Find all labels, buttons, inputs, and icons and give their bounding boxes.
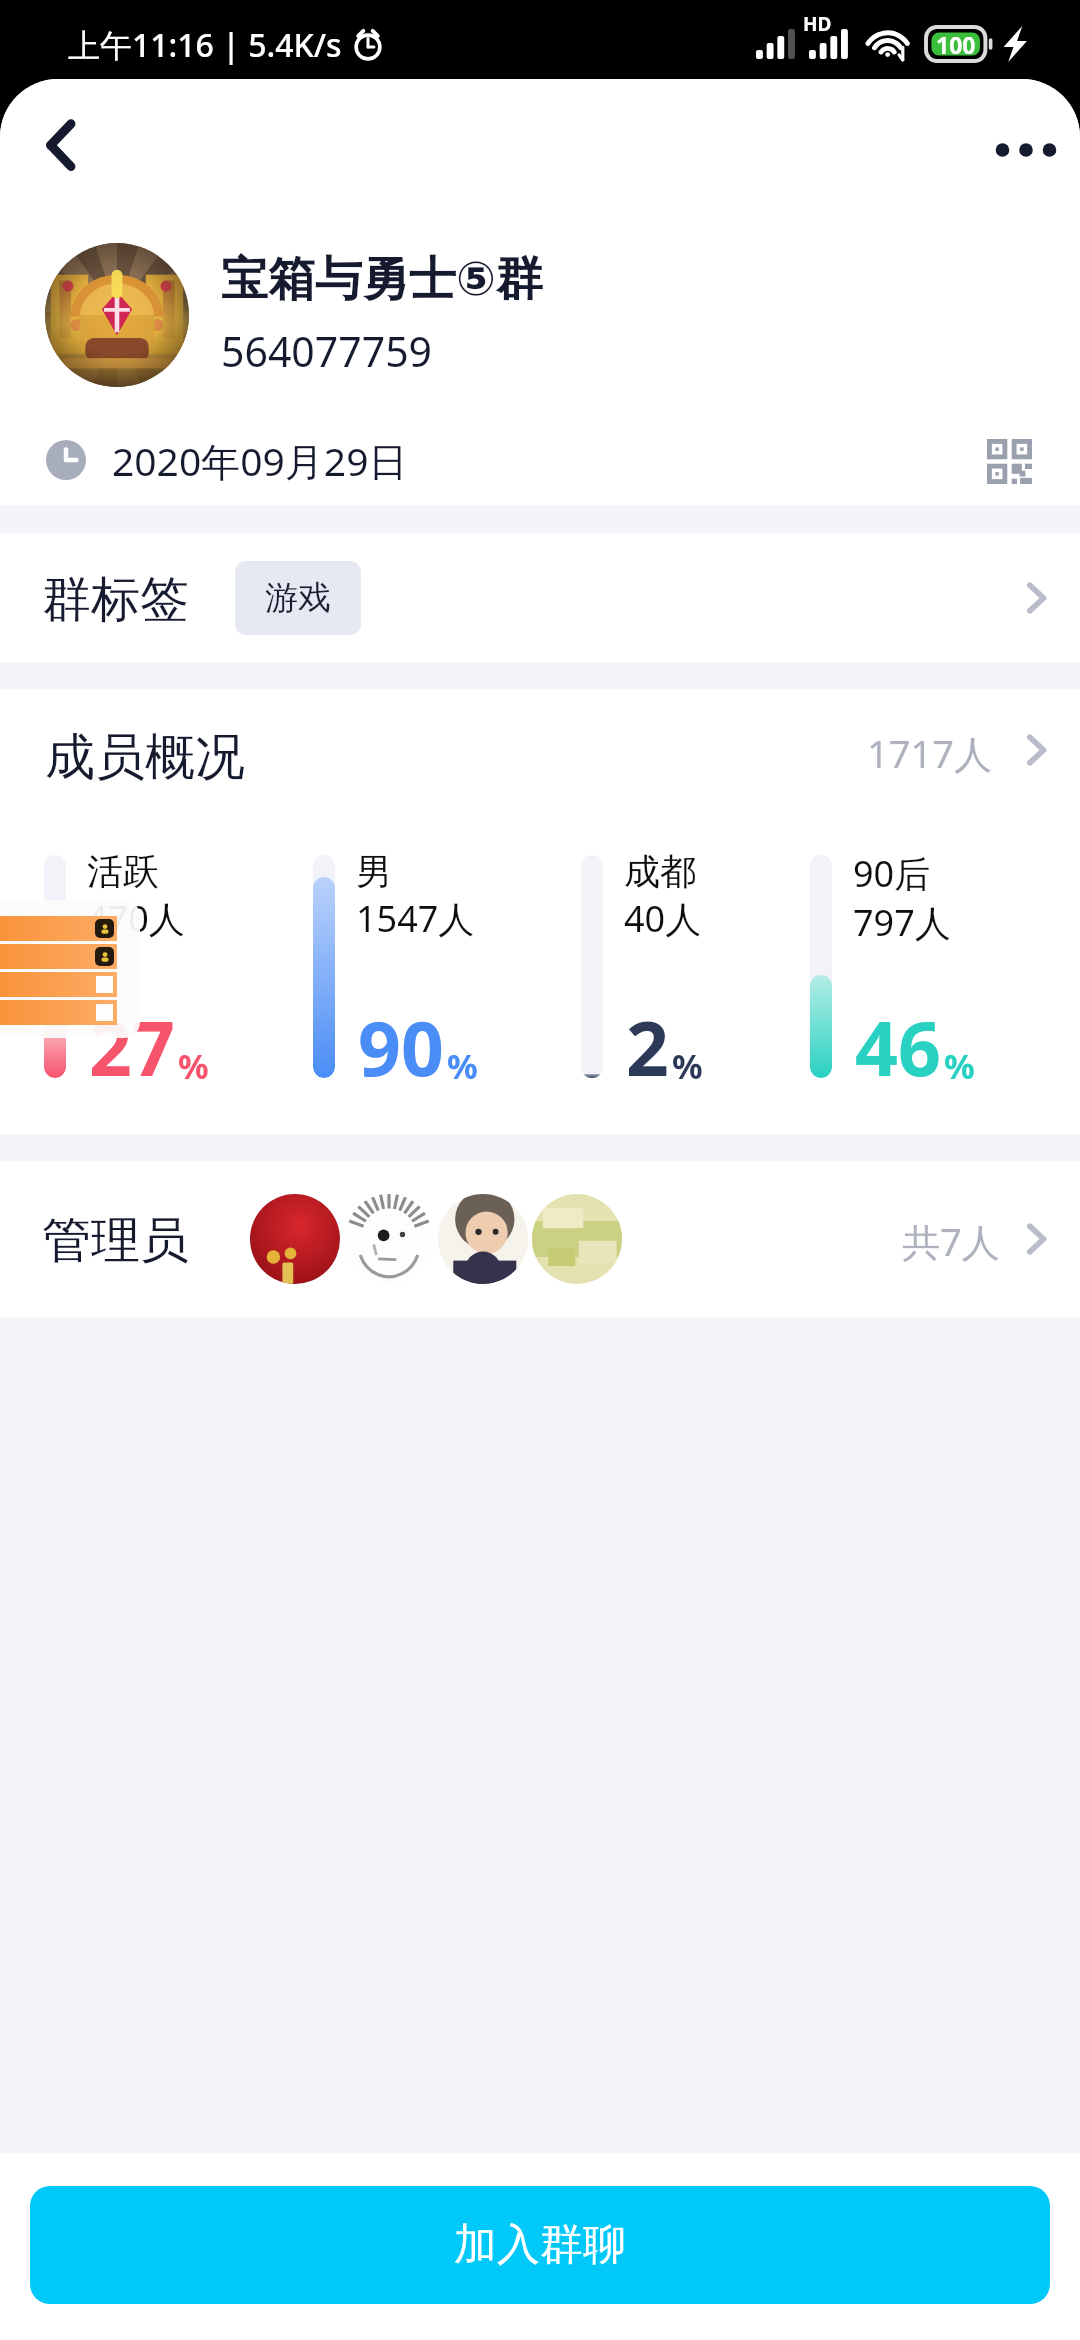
staticText: 成都 xyxy=(624,849,696,894)
button[interactable]: 加入群聊 xyxy=(30,2186,1050,2304)
button[interactable]: Back xyxy=(26,101,106,181)
staticText: 100 xyxy=(936,29,976,60)
staticText: 1717人 xyxy=(867,727,992,779)
button[interactable]: QR code xyxy=(984,435,1034,485)
staticText: 加入群聊 xyxy=(454,2218,626,2272)
staticText: 27 xyxy=(89,996,175,1098)
staticText: 群标签 xyxy=(42,569,189,631)
button[interactable]: 群标签 xyxy=(0,533,1080,662)
staticText: 男 xyxy=(356,849,392,894)
staticText: 1547人 xyxy=(356,894,475,943)
staticText: 40人 xyxy=(624,894,702,943)
button[interactable]: 成员概况 xyxy=(0,689,1080,811)
staticText: 2 xyxy=(626,996,669,1098)
staticText: 564077759 xyxy=(221,323,433,379)
staticText: 管理员 xyxy=(42,1210,189,1272)
staticText: 成员概况 xyxy=(45,726,245,789)
staticText: % xyxy=(178,1043,209,1089)
staticText: 90后 xyxy=(853,849,931,898)
staticText: % xyxy=(672,1043,703,1089)
staticText: 46 xyxy=(855,996,941,1098)
staticText: 90 xyxy=(358,996,444,1098)
staticText: % xyxy=(944,1043,975,1089)
staticText: 797人 xyxy=(853,898,951,947)
button[interactable]: 管理员 xyxy=(0,1161,1080,1317)
staticText: 2020年09月29日 xyxy=(112,434,408,486)
staticText: HD xyxy=(803,11,832,37)
staticText: 游戏 xyxy=(265,577,331,619)
staticText: 上午11:16 | 5.4K/s xyxy=(68,23,342,67)
staticText: 活跃 xyxy=(87,849,159,894)
staticText: 共7人 xyxy=(902,1215,1000,1267)
button[interactable]: More options xyxy=(984,105,1074,195)
staticText: 470人 xyxy=(87,894,185,943)
staticText: % xyxy=(447,1043,478,1089)
staticText: 宝箱与勇士⑤群 xyxy=(221,250,543,309)
